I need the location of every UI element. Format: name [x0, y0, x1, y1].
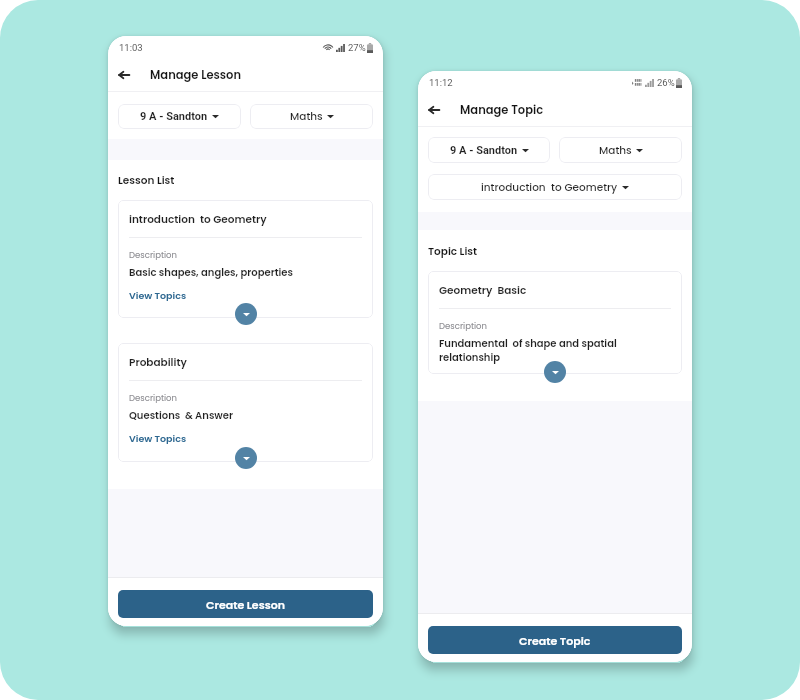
button[interactable]: Maths: [559, 137, 682, 163]
staticText: Topic List: [428, 244, 478, 259]
staticText: Description: [129, 249, 177, 261]
staticText: Lesson List: [118, 173, 175, 188]
button[interactable]: Back: [113, 64, 135, 86]
button[interactable]: 9 A - Sandton: [118, 104, 241, 129]
button[interactable]: Geometry Basic: [428, 271, 682, 374]
button[interactable]: View Topics: [126, 431, 190, 446]
button[interactable]: Probability: [118, 343, 373, 462]
staticText: Description: [439, 320, 487, 332]
staticText: Probability: [129, 355, 187, 370]
button[interactable]: Create Topic: [428, 626, 682, 654]
staticText: Maths: [290, 109, 323, 124]
button[interactable]: Create Lesson: [118, 590, 373, 618]
staticText: 9 A - Sandton: [450, 144, 518, 157]
staticText: Description: [129, 392, 177, 404]
button[interactable]: View Topics: [126, 288, 190, 303]
staticText: Create Lesson: [206, 597, 285, 612]
button[interactable]: Expand: [544, 361, 566, 383]
staticText: 11:03: [119, 42, 143, 53]
button[interactable]: introduction to Geometry: [428, 174, 682, 200]
staticText: Basic shapes, angles, properties: [129, 265, 293, 279]
button[interactable]: 9 A - Sandton: [428, 137, 550, 163]
staticText: 27%: [348, 42, 366, 53]
staticText: Maths: [599, 143, 632, 158]
staticText: Questions & Answer: [129, 408, 233, 422]
staticText: Manage Topic: [460, 102, 544, 118]
staticText: 9 A - Sandton: [140, 110, 208, 123]
staticText: View Topics: [129, 289, 187, 302]
staticText: View Topics: [129, 432, 187, 445]
staticText: Manage Lesson: [150, 67, 242, 83]
staticText: Geometry Basic: [439, 283, 527, 298]
staticText: 11:12: [429, 77, 453, 88]
button[interactable]: Expand: [235, 303, 257, 325]
button[interactable]: Back: [423, 99, 445, 121]
staticText: 26%: [657, 77, 675, 88]
button[interactable]: introduction to Geometry: [118, 200, 373, 318]
button[interactable]: Expand: [235, 447, 257, 469]
staticText: Fundamental of shape and spatial relatio…: [439, 336, 649, 364]
staticText: introduction to Geometry: [129, 212, 267, 227]
staticText: Create Topic: [519, 633, 591, 648]
button[interactable]: Maths: [250, 104, 373, 129]
staticText: introduction to Geometry: [481, 180, 618, 195]
